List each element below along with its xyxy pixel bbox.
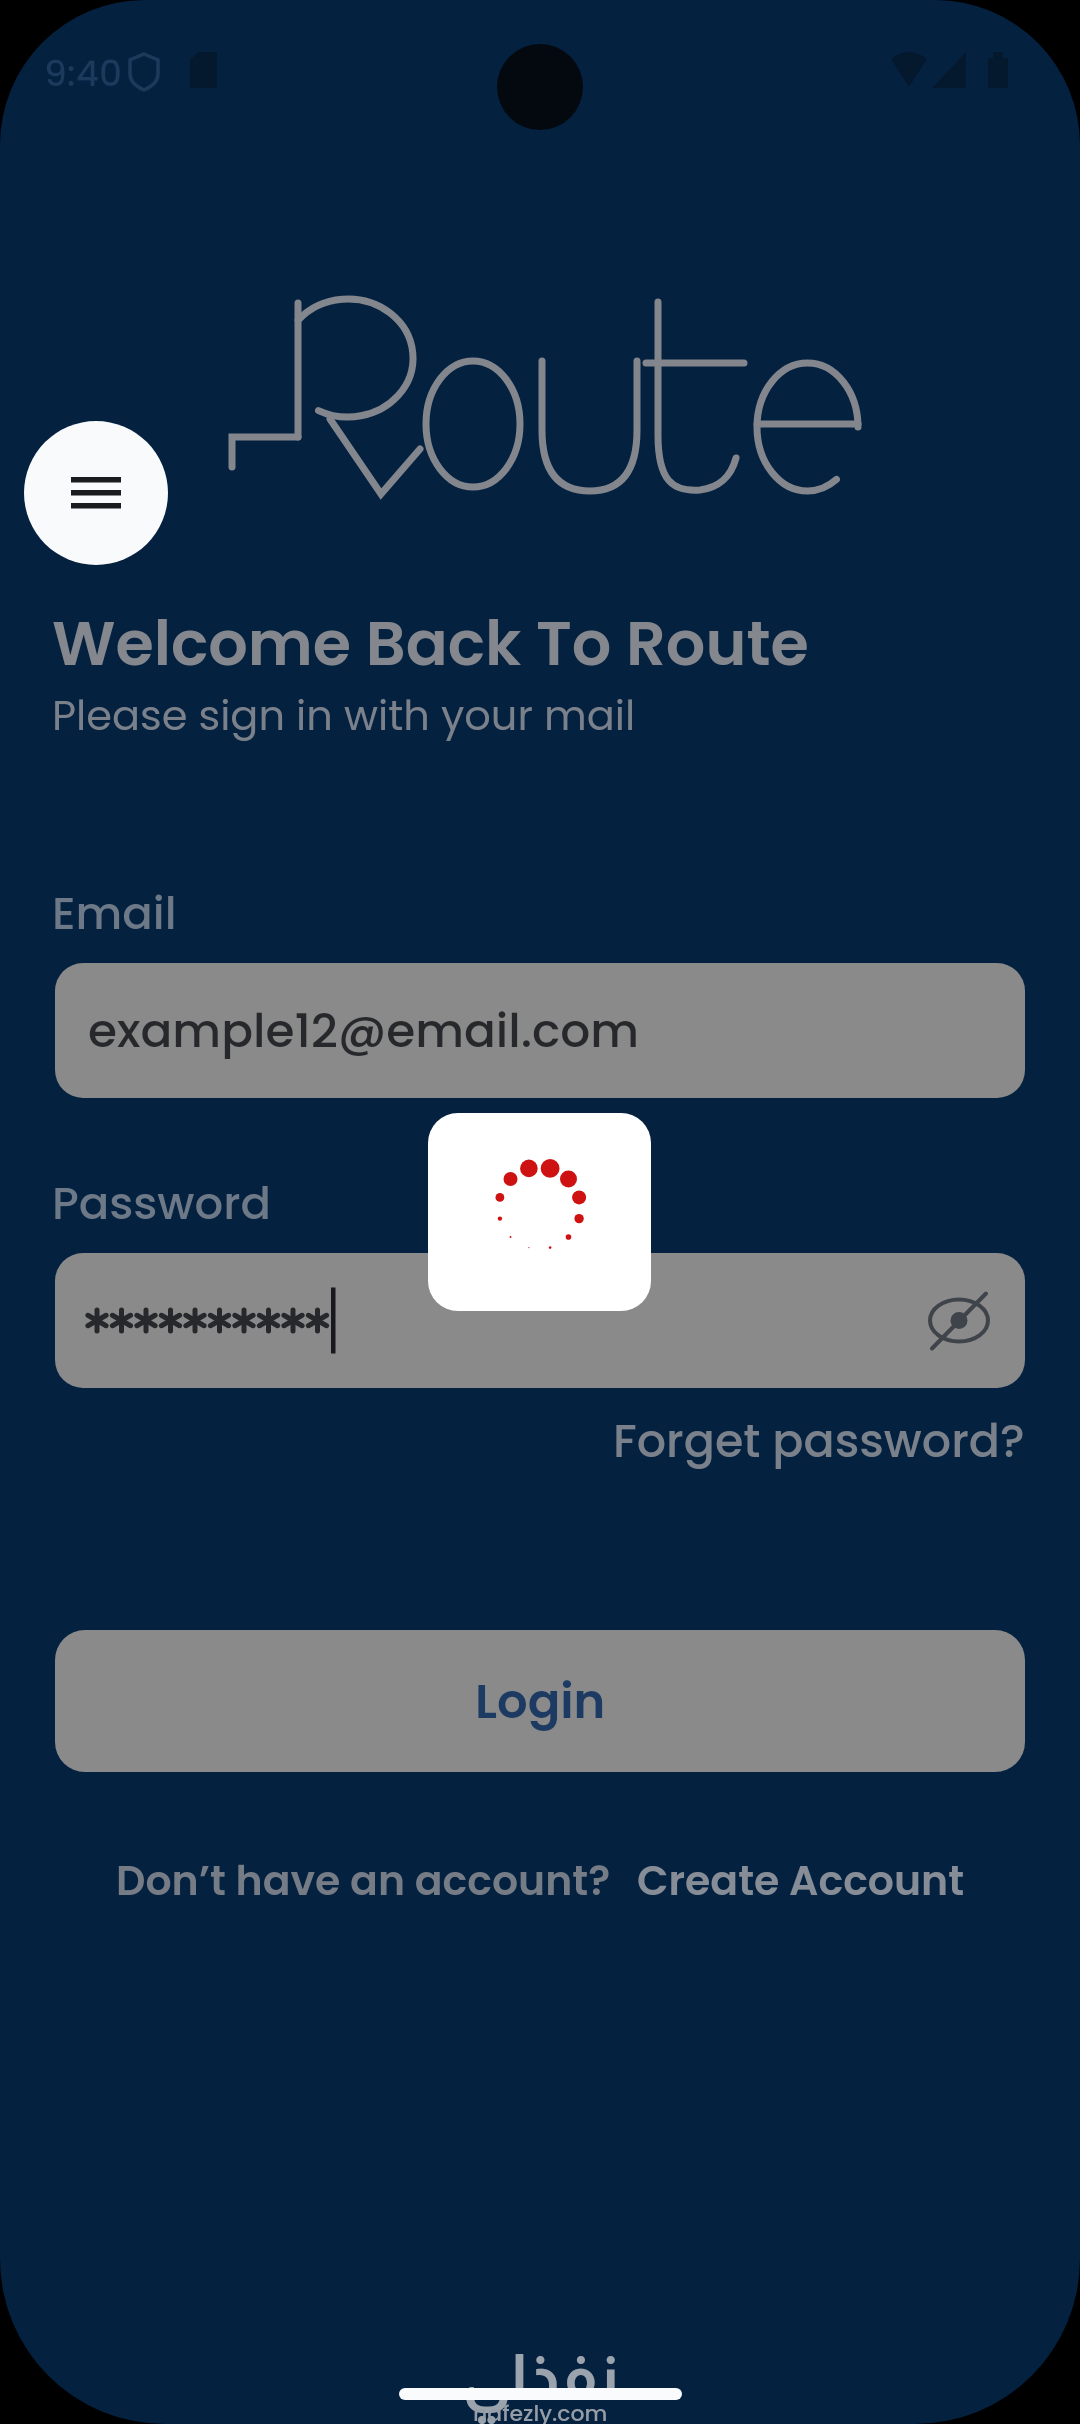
staticText: Welcome Back To Route — [52, 600, 809, 687]
button[interactable] — [24, 421, 168, 565]
staticText: example12@email.com — [88, 998, 640, 1064]
staticText: Password — [52, 1172, 271, 1235]
staticText: Don’t have an account? — [116, 1852, 611, 1909]
button[interactable]: example12@email.com — [55, 963, 1025, 1098]
staticText: Email — [52, 882, 177, 945]
staticText: 9:40 — [44, 48, 123, 98]
staticText: Please sign in with your mail — [52, 686, 636, 744]
staticText: Login — [475, 1668, 606, 1735]
staticText: nafezly.com — [473, 2398, 608, 2424]
button[interactable]: Login — [55, 1630, 1025, 1772]
button[interactable] — [55, 1253, 1025, 1388]
button[interactable]: Create Account — [637, 1852, 965, 1909]
staticText: نفذلي — [462, 2342, 619, 2411]
button[interactable]: Forget password? — [613, 1409, 1025, 1473]
